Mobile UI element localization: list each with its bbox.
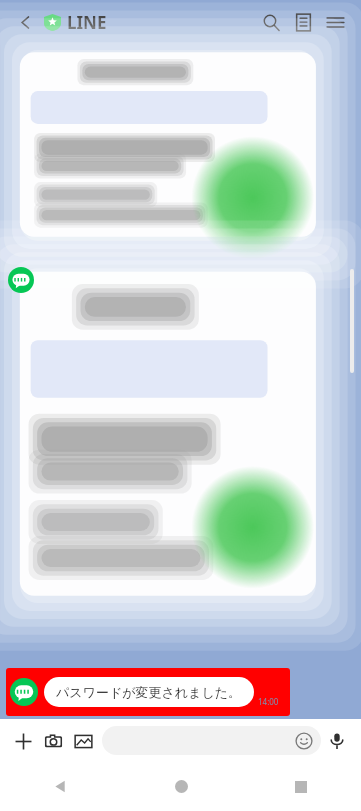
button[interactable]: Recent apps [241, 762, 361, 811]
button[interactable]: Camera [38, 726, 68, 756]
button[interactable]: Search [255, 6, 287, 38]
staticText: LINE [67, 11, 107, 34]
button[interactable]: パスワードが変更されました。 [10, 672, 286, 712]
button[interactable]: Menu [319, 6, 351, 38]
button[interactable] [102, 726, 321, 755]
button[interactable]: Gallery [68, 726, 98, 756]
button[interactable]: Home [121, 762, 241, 811]
button[interactable]: Notes [287, 6, 319, 38]
staticText: 14:00 [258, 696, 279, 707]
button[interactable]: Back [0, 762, 121, 811]
staticText: パスワードが変更されました。 [56, 684, 242, 700]
button[interactable]: Voice message [321, 725, 353, 757]
button[interactable]: Back [10, 7, 40, 37]
button[interactable]: Add [8, 726, 38, 756]
